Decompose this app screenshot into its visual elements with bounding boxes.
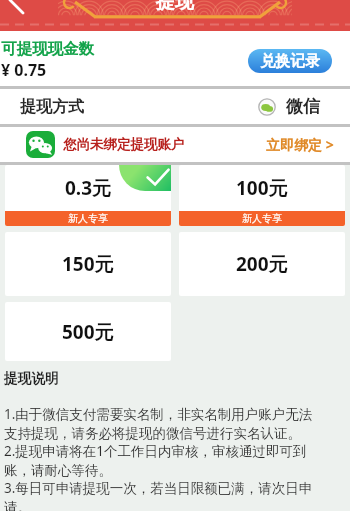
button[interactable]: Back [0,0,34,31]
staticText: 您尚未绑定提现账户 [63,136,185,153]
staticText: 兑换记录 [260,52,320,71]
button[interactable]: 200元 [179,232,345,296]
button[interactable]: 500元 [5,302,171,361]
staticText: 提现说明 [4,370,59,387]
button[interactable]: 0.3元 [5,165,171,226]
staticText: 新人专享 [242,212,282,225]
staticText: 提现 [156,0,194,14]
staticText: 可提现现金数 [1,39,94,59]
staticText: 200元 [236,251,288,277]
button[interactable]: 提现方式 [0,89,350,124]
staticText: 新人专享 [68,212,108,225]
staticText: 500元 [62,319,114,345]
staticText: 立即绑定 > [266,135,334,154]
button[interactable]: 150元 [5,232,171,296]
button[interactable]: 您尚未绑定提现账户 [0,127,350,162]
staticText: 微信 [286,96,320,117]
staticText: 提现方式 [20,97,84,117]
staticText: 1.由于微信支付需要实名制，非实名制用户账户无法 支持提现，请务必将提现的微信号… [4,405,313,511]
staticText: 0.3元 [65,175,112,201]
button[interactable]: 兑换记录 [248,49,332,73]
staticText: 100元 [236,175,288,201]
staticText: ¥ 0.75 [1,59,47,81]
button[interactable]: 100元 [179,165,345,226]
staticText: 150元 [62,251,114,277]
